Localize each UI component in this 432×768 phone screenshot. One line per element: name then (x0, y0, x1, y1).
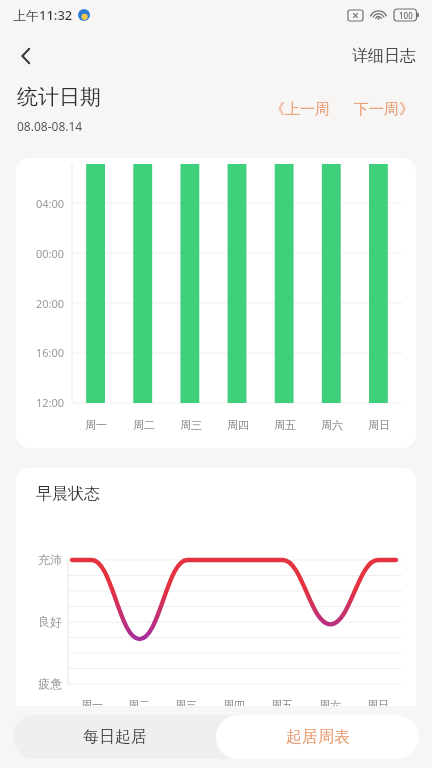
staticText: 周五 (271, 698, 293, 712)
staticText: 20:00 (18, 296, 64, 311)
button[interactable]: 早晨状态 (16, 468, 416, 718)
staticText: 上午11:32 (13, 6, 73, 24)
staticText: 疲惫 (28, 676, 62, 691)
staticText: 起居周表 (286, 727, 350, 747)
staticText: 充沛 (28, 552, 62, 567)
staticText: 每日起居 (83, 727, 147, 747)
staticText: 00:00 (18, 246, 64, 261)
staticText: 统计日期 (17, 84, 101, 110)
staticText: 100 (399, 10, 413, 21)
button[interactable]: Back (4, 34, 48, 78)
staticText: 16:00 (18, 345, 64, 360)
staticText: 周三 (175, 698, 197, 712)
staticText: 下一周》 (354, 100, 414, 119)
staticText: 《上一周 (270, 100, 330, 119)
staticText: 周二 (133, 418, 155, 432)
staticText: 周六 (321, 418, 343, 432)
staticText: 周四 (223, 698, 245, 712)
staticText: 周三 (180, 418, 202, 432)
button[interactable]: 04:00 (16, 158, 416, 448)
staticText: 周一 (81, 698, 103, 712)
staticText: 周日 (367, 698, 389, 712)
staticText: 良好 (28, 614, 62, 629)
staticText: 周日 (368, 418, 390, 432)
staticText: 周五 (274, 418, 296, 432)
staticText: 12:00 (18, 395, 64, 410)
staticText: 04:00 (18, 196, 64, 211)
button[interactable]: 详细日志 (348, 38, 420, 74)
staticText: 详细日志 (352, 46, 416, 66)
staticText: 周二 (128, 698, 150, 712)
button[interactable]: 下一周》 (350, 96, 418, 123)
button[interactable]: 起居周表 (216, 715, 419, 759)
button[interactable]: 《上一周 (266, 96, 334, 123)
staticText: 周一 (85, 418, 107, 432)
staticText: 周六 (319, 698, 341, 712)
staticText: 早晨状态 (36, 484, 100, 504)
staticText: 周四 (227, 418, 249, 432)
staticText: 08.08-08.14 (17, 118, 83, 134)
button[interactable]: 每日起居 (13, 715, 216, 759)
